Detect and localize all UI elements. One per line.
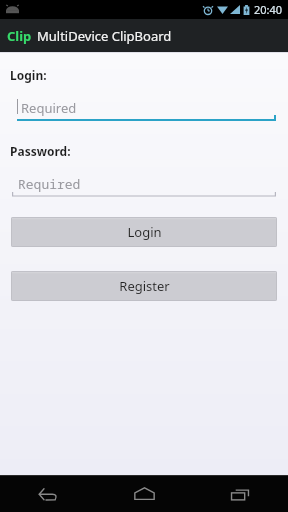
staticText: Required (18, 175, 81, 193)
button[interactable]: Register (11, 271, 277, 301)
button[interactable]: Back (0, 475, 96, 512)
staticText: Clip (7, 27, 32, 45)
button[interactable]: Home (96, 475, 192, 512)
staticText: 20:40 (254, 2, 283, 17)
staticText: Register (119, 277, 170, 295)
button[interactable]: Required (12, 171, 276, 197)
button[interactable]: Login (11, 217, 277, 247)
staticText: Login: (10, 67, 47, 83)
button[interactable]: Recent apps (192, 475, 288, 512)
button[interactable]: Required (17, 95, 276, 121)
staticText: Login (127, 223, 162, 241)
staticText: Password: (10, 143, 71, 159)
staticText: Required (21, 99, 77, 117)
staticText: MultiDevice ClipBoard (37, 27, 172, 45)
